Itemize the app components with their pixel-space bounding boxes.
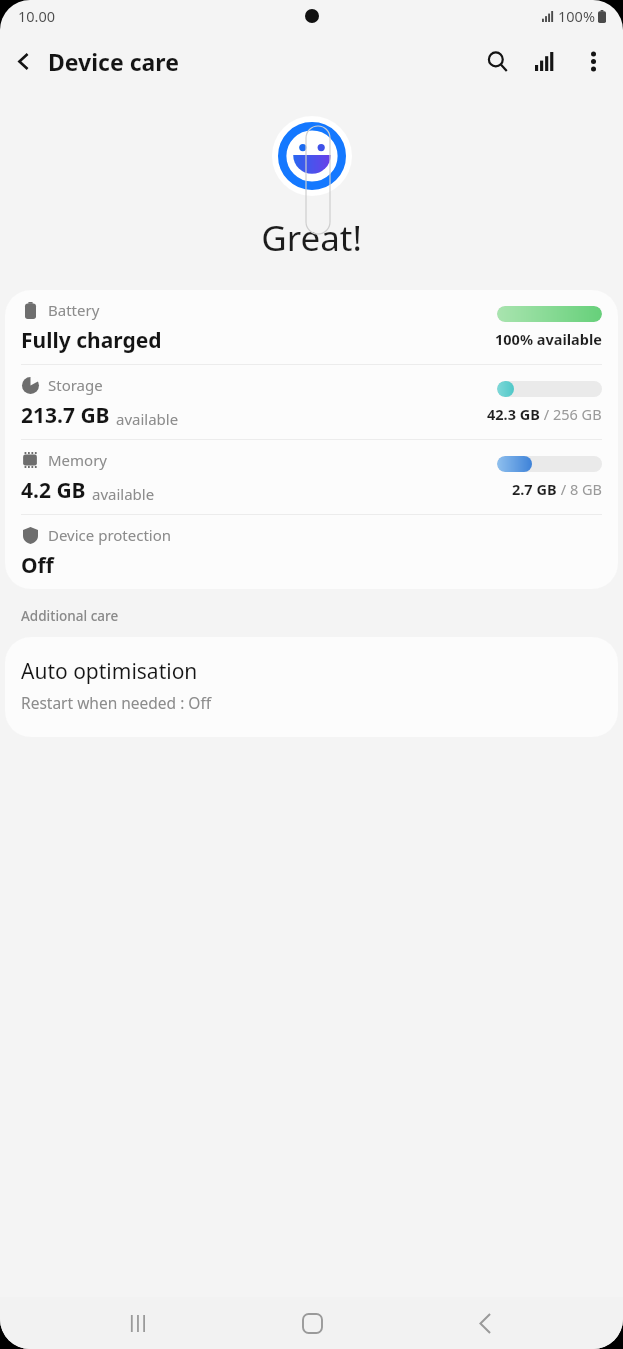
- staticText: / 8 GB: [557, 479, 602, 499]
- staticText: 100% available: [495, 329, 602, 349]
- staticText: Memory: [48, 450, 108, 470]
- staticText: 100%: [558, 6, 595, 26]
- staticText: 10.00: [18, 6, 56, 26]
- staticText: Additional care: [21, 607, 119, 625]
- button[interactable]: More options: [569, 37, 617, 85]
- staticText: Fully charged: [21, 326, 162, 355]
- staticText: Battery: [48, 300, 100, 320]
- button[interactable]: Search: [473, 37, 521, 85]
- staticText: available: [92, 484, 155, 504]
- staticText: Device care: [48, 46, 179, 77]
- staticText: available: [116, 409, 179, 429]
- button[interactable]: Back: [0, 37, 48, 85]
- staticText: Auto optimisation: [21, 657, 198, 686]
- staticText: Restart when needed : Off: [21, 692, 212, 713]
- staticText: Off: [21, 551, 54, 580]
- button[interactable]: Device protection: [5, 515, 618, 589]
- staticText: 2.7 GB: [512, 479, 557, 499]
- staticText: Storage: [48, 375, 103, 395]
- staticText: Great!: [261, 214, 362, 262]
- staticText: / 256 GB: [540, 404, 602, 424]
- button[interactable]: Usage statistics: [521, 37, 569, 85]
- button[interactable]: Storage: [5, 365, 618, 439]
- button[interactable]: Back: [450, 1297, 520, 1349]
- button[interactable]: Home: [277, 1297, 347, 1349]
- staticText: 4.2 GB: [21, 476, 86, 505]
- button[interactable]: Battery: [5, 290, 618, 364]
- button[interactable]: Recent apps: [103, 1297, 173, 1349]
- staticText: Device protection: [48, 525, 172, 545]
- staticText: 42.3 GB: [487, 404, 540, 424]
- button[interactable]: Memory: [5, 440, 618, 514]
- button[interactable]: Auto optimisation: [5, 637, 618, 737]
- staticText: 213.7 GB: [21, 401, 110, 430]
